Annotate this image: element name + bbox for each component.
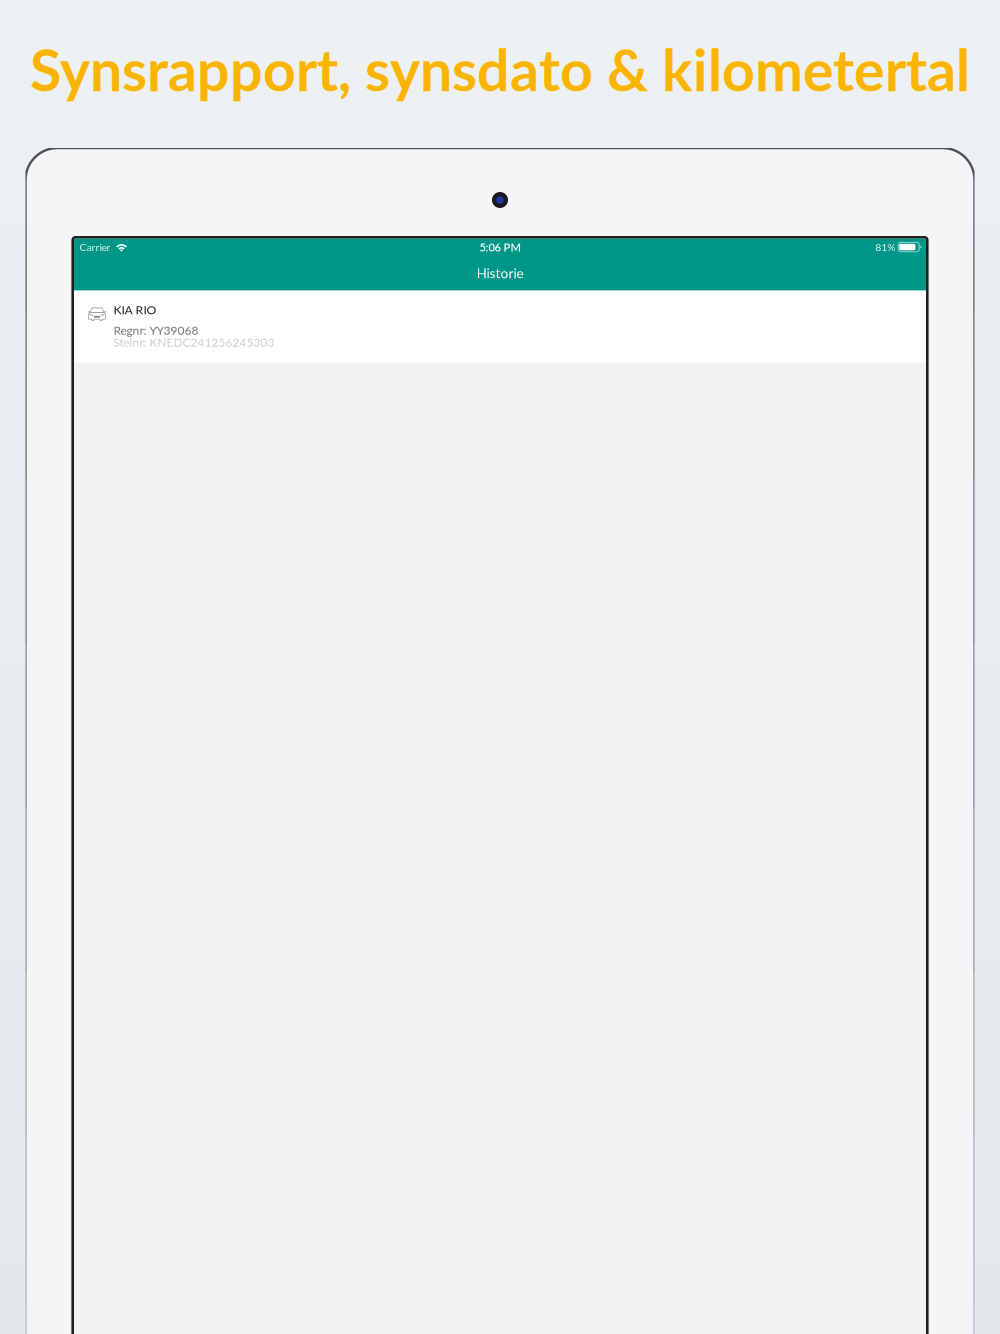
button[interactable]: KIA RIO <box>74 291 926 362</box>
staticText: Synsrapport, synsdato & kilometertal <box>30 35 970 103</box>
staticText: KIA RIO <box>113 302 156 317</box>
staticText: Regnr: YY39068 <box>113 323 198 337</box>
staticText: 5:06 PM <box>479 240 520 254</box>
staticText: Carrier <box>79 241 110 253</box>
staticText: Historie <box>476 265 523 281</box>
staticText: 81% <box>875 241 895 253</box>
staticText: Stelnr: KNEDC241256245303 <box>113 335 274 349</box>
